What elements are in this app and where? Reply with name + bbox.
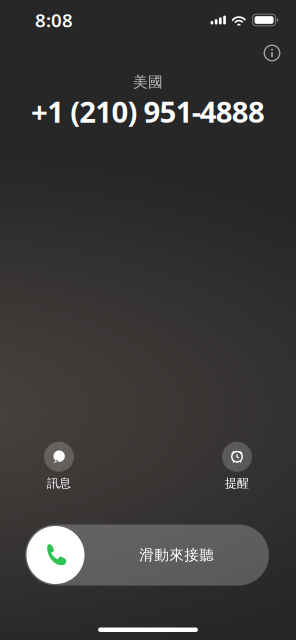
button[interactable]: 訊息: [24, 442, 94, 490]
button[interactable]: 滑動來接聽: [25, 524, 269, 585]
staticText: 滑動來接聽: [139, 546, 214, 564]
staticText: 提醒: [225, 476, 249, 490]
button[interactable]: Call details: [259, 40, 285, 66]
staticText: 訊息: [47, 476, 71, 490]
staticText: 8:08: [35, 8, 73, 32]
staticText: +1 (210) 951-4888: [31, 92, 265, 131]
staticText: 美國: [133, 73, 163, 91]
button[interactable]: 提醒: [202, 442, 272, 490]
